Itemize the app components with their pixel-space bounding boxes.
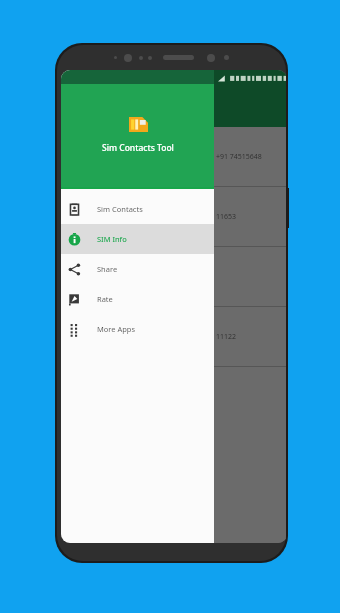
staticText: Share xyxy=(97,264,118,274)
button[interactable]: Sim Contacts xyxy=(61,194,214,224)
staticText: Sim Contacts Tool xyxy=(102,142,174,154)
staticText: Rate xyxy=(97,294,113,304)
staticText: 11122 xyxy=(216,332,237,342)
button[interactable]: SIM Info xyxy=(61,224,214,254)
other: SIM Info xyxy=(68,233,81,246)
staticText: 11653 xyxy=(216,212,237,222)
button[interactable]: +91 74515648 xyxy=(61,127,286,187)
button[interactable] xyxy=(61,247,286,307)
other: Rate xyxy=(68,293,81,306)
staticText: SIM Info xyxy=(97,234,127,244)
other: More Apps xyxy=(68,323,81,336)
button[interactable]: 11653 xyxy=(61,187,286,247)
staticText: More Apps xyxy=(97,324,136,334)
button[interactable]: Share xyxy=(61,254,214,284)
staticText: +91 74515648 xyxy=(216,152,262,162)
button[interactable]: 11122 xyxy=(61,307,286,367)
button[interactable]: More Apps xyxy=(61,314,214,344)
button[interactable]: Rate xyxy=(61,284,214,314)
staticText: Sim Contacts xyxy=(97,204,143,214)
other: Sim Contacts xyxy=(68,203,81,216)
other: Share xyxy=(68,263,81,276)
